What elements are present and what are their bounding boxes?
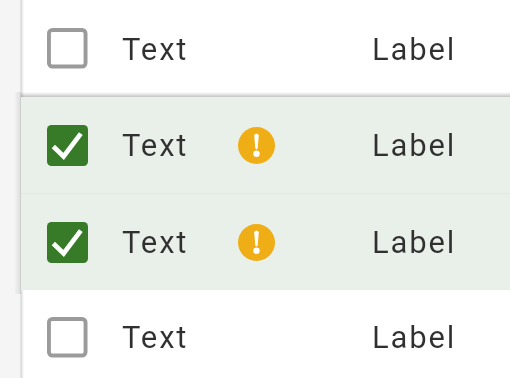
other: Warning: [238, 127, 275, 164]
staticText: Text: [122, 31, 189, 67]
button[interactable]: Checked, toggle selection: [47, 222, 88, 263]
staticText: Label: [372, 224, 457, 260]
staticText: Label: [372, 31, 457, 67]
button[interactable]: Unchecked, toggle selection: [22, 289, 510, 378]
button[interactable]: Unchecked, toggle selection: [47, 317, 88, 358]
staticText: Text: [122, 319, 189, 355]
button[interactable]: Checked, toggle selection: [21, 194, 510, 290]
button[interactable]: Checked, toggle selection: [21, 97, 510, 193]
staticText: Text: [122, 224, 189, 260]
button[interactable]: Unchecked, toggle selection: [22, 0, 510, 97]
staticText: Label: [372, 319, 457, 355]
staticText: Label: [372, 127, 457, 163]
other: Warning: [238, 224, 275, 261]
button[interactable]: Checked, toggle selection: [47, 125, 88, 166]
staticText: Text: [122, 127, 189, 163]
button[interactable]: Unchecked, toggle selection: [47, 28, 88, 69]
